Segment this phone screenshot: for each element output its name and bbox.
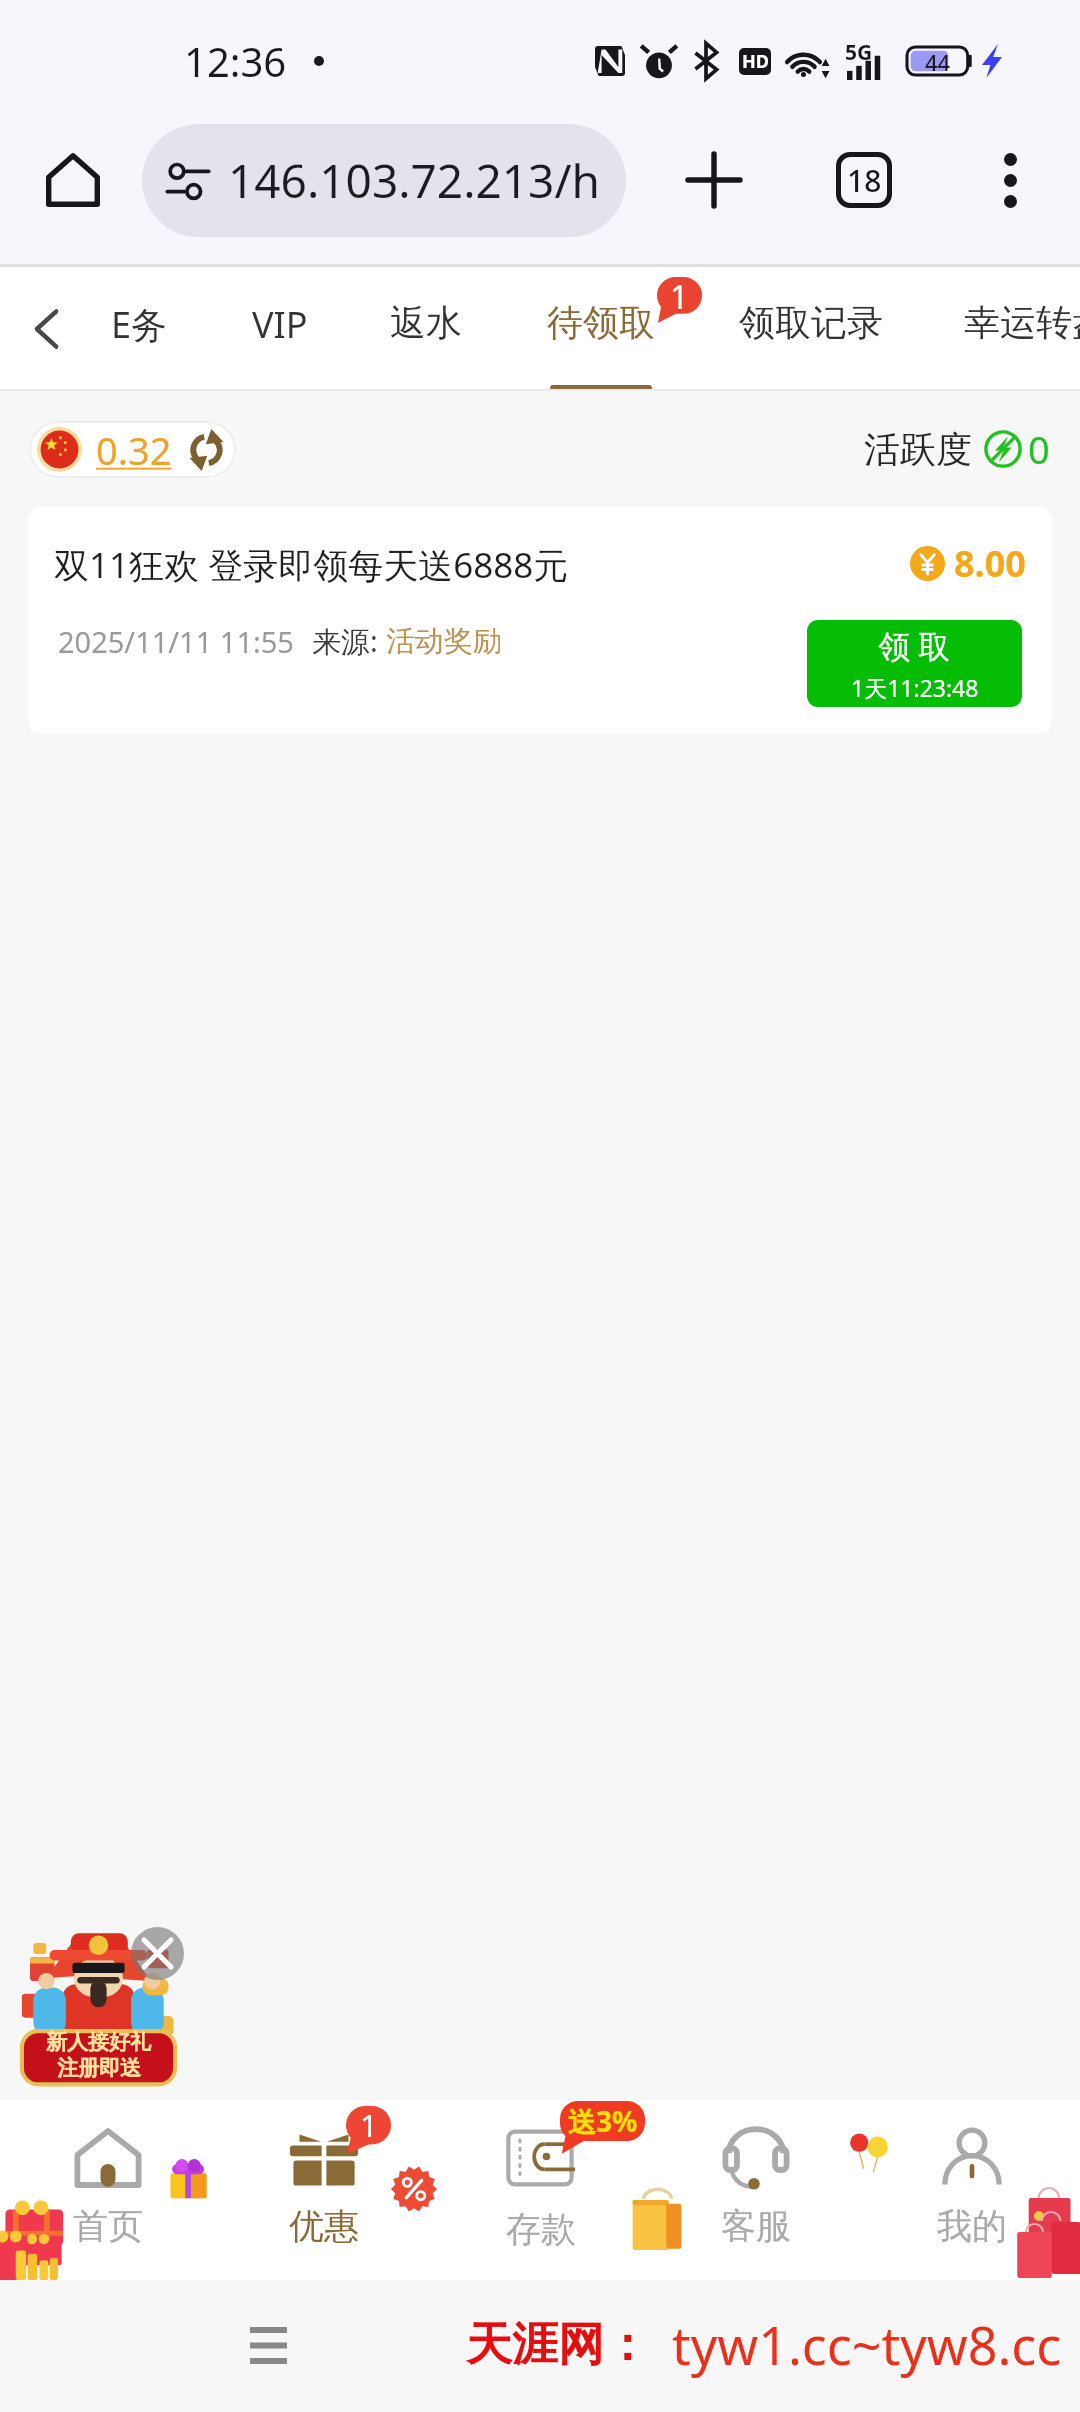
staticText: 返水 bbox=[390, 300, 462, 345]
button[interactable]: 双11狂欢 登录即领每天送6888元 bbox=[28, 507, 1052, 734]
staticText: 44 bbox=[925, 47, 951, 75]
staticText: 客服 bbox=[721, 2204, 791, 2248]
button[interactable]: 返水 bbox=[390, 267, 462, 391]
button[interactable]: 送3% bbox=[432, 2100, 648, 2280]
staticText: 注册即送 bbox=[57, 2055, 141, 2081]
staticText: HD bbox=[742, 49, 769, 74]
staticText: 1天11:23:48 bbox=[851, 672, 979, 703]
staticText: 送3% bbox=[568, 2102, 638, 2140]
staticText: 存款 bbox=[506, 2207, 576, 2251]
staticText: 活跃度 bbox=[864, 427, 972, 472]
button[interactable]: 首页 bbox=[0, 2100, 216, 2280]
staticText: 来源: bbox=[312, 621, 386, 661]
staticText: 1 bbox=[360, 2104, 378, 2146]
button[interactable]: Tabs bbox=[820, 136, 908, 224]
button[interactable]: VIP bbox=[252, 267, 308, 391]
staticText: 0 bbox=[1028, 423, 1050, 475]
button[interactable]: Close ad bbox=[131, 1927, 184, 1980]
button[interactable]: 客服 bbox=[648, 2100, 864, 2280]
button[interactable]: 领取记录 bbox=[739, 267, 883, 391]
button[interactable]: 0.32 bbox=[37, 421, 226, 478]
staticText: 8.00 bbox=[954, 539, 1026, 588]
staticText: 天涯网： bbox=[466, 2316, 650, 2374]
staticText: 0.32 bbox=[96, 424, 172, 476]
button[interactable]: 146.103.72.213/h bbox=[142, 124, 626, 237]
button[interactable]: 活跃度 bbox=[864, 423, 1050, 475]
staticText: 18 bbox=[847, 160, 882, 201]
staticText: 首页 bbox=[73, 2204, 143, 2248]
button[interactable]: 我的 bbox=[864, 2100, 1080, 2280]
button[interactable]: New tab bbox=[670, 136, 758, 224]
button[interactable]: Home bbox=[32, 139, 114, 221]
button[interactable]: 1 bbox=[216, 2100, 432, 2280]
staticText: 12:36 bbox=[184, 34, 287, 88]
button[interactable]: Menu bbox=[218, 2305, 318, 2385]
staticText: 幸运转盘 bbox=[964, 300, 1080, 345]
staticText: VIP bbox=[252, 300, 308, 349]
staticText: 2025/11/11 11:55 bbox=[58, 622, 294, 661]
staticText: 双11狂欢 登录即领每天送6888元 bbox=[54, 541, 569, 589]
button[interactable]: More options bbox=[966, 136, 1054, 224]
staticText: 活动奖励 bbox=[386, 623, 502, 660]
staticText: 新人接好礼 bbox=[46, 2029, 151, 2055]
button[interactable]: 幸运转盘 bbox=[964, 267, 1080, 391]
staticText: E务 bbox=[111, 300, 168, 349]
button[interactable]: 领 取 bbox=[807, 620, 1022, 707]
staticText: 我的 bbox=[937, 2204, 1007, 2248]
staticText: 146.103.72.213/h bbox=[228, 149, 600, 212]
staticText: 5G bbox=[845, 38, 873, 67]
staticText: tyw1.cc~tyw8.cc bbox=[672, 2309, 1062, 2380]
button[interactable]: Back bbox=[14, 296, 80, 362]
staticText: 1 bbox=[670, 275, 689, 319]
button[interactable]: 待领取 bbox=[547, 267, 655, 391]
staticText: 领 取 bbox=[878, 624, 951, 668]
staticText: 待领取 bbox=[547, 300, 655, 345]
button[interactable]: 新人接好礼 bbox=[17, 1927, 180, 2086]
staticText: 优惠 bbox=[289, 2204, 359, 2248]
button[interactable]: E务 bbox=[111, 267, 168, 391]
staticText: 领取记录 bbox=[739, 300, 883, 345]
